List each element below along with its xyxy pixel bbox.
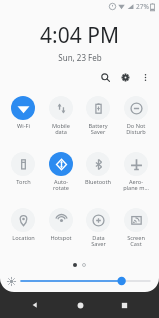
button[interactable]: Do Not Disturb	[118, 96, 154, 136]
button[interactable]: Auto- rotate	[43, 152, 79, 192]
button[interactable]: Mobile data	[43, 96, 79, 136]
staticText: Bluetooth	[85, 178, 111, 186]
staticText: Auto- rotate	[53, 178, 69, 192]
button[interactable]: More options	[137, 69, 154, 86]
button[interactable]: Home	[70, 295, 90, 315]
button[interactable]: Location	[5, 208, 41, 242]
button[interactable]: Torch	[5, 152, 41, 186]
staticText: Sun, 23 Feb	[58, 52, 102, 63]
button[interactable]	[21, 274, 150, 288]
staticText: Aero- plane m…	[123, 178, 149, 192]
button[interactable]: Data Saver	[80, 208, 116, 248]
button[interactable]: Bluetooth	[80, 152, 116, 186]
button[interactable]: Recent apps	[114, 295, 134, 315]
other: Brightness	[7, 277, 16, 286]
staticText: Hotspot	[50, 234, 72, 242]
staticText: Do Not Disturb	[126, 122, 146, 136]
staticText: Location	[12, 234, 35, 242]
button[interactable]: Search	[97, 69, 114, 86]
staticText: Battery Saver	[88, 122, 108, 136]
button[interactable]: Screen Cast	[118, 208, 154, 248]
button[interactable]: Aero- plane m…	[118, 152, 154, 192]
staticText: 4:04 PM	[40, 21, 119, 50]
button[interactable]: Battery Saver	[80, 96, 116, 136]
button[interactable]: Wi-Fi	[5, 96, 41, 130]
staticText: Wi-Fi	[17, 122, 30, 130]
staticText: 27%	[136, 2, 149, 11]
staticText: Screen Cast	[127, 234, 145, 248]
button[interactable]: Back	[25, 295, 45, 315]
staticText: Data Saver	[91, 234, 106, 248]
staticText: Mobile data	[52, 122, 70, 136]
button[interactable]: Settings	[117, 69, 134, 86]
staticText: Torch	[16, 178, 31, 186]
button[interactable]: Hotspot	[43, 208, 79, 242]
